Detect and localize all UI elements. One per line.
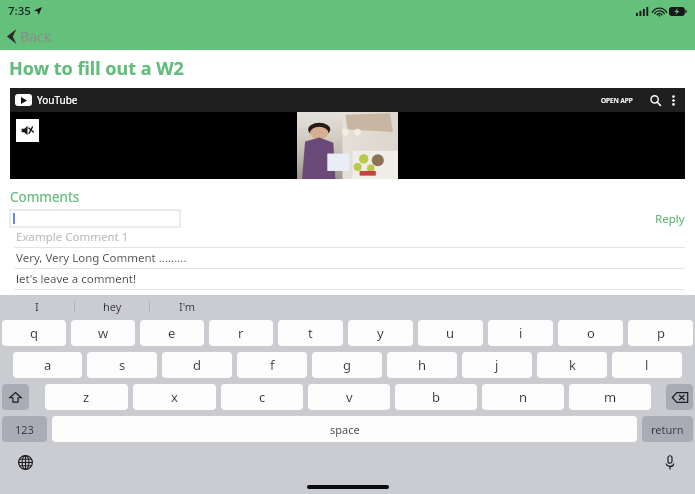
staticText: How to fill out a W2 bbox=[9, 56, 184, 81]
button[interactable] bbox=[10, 210, 180, 227]
button[interactable]: t bbox=[278, 320, 343, 346]
button[interactable]: b bbox=[395, 384, 477, 410]
staticText: u bbox=[446, 324, 455, 342]
button[interactable]: w bbox=[71, 320, 135, 346]
staticText: v bbox=[346, 388, 353, 406]
staticText: h bbox=[418, 356, 427, 374]
staticText: z bbox=[83, 388, 90, 406]
staticText: i bbox=[519, 324, 523, 342]
button[interactable]: z bbox=[45, 384, 128, 410]
staticText: k bbox=[569, 356, 576, 374]
button[interactable]: f bbox=[237, 352, 307, 378]
staticText: 7:35 bbox=[8, 3, 31, 19]
staticText: 123 bbox=[15, 422, 34, 437]
staticText: hey bbox=[103, 299, 122, 314]
button[interactable]: r bbox=[209, 320, 273, 346]
button[interactable]: c bbox=[221, 384, 303, 410]
staticText: c bbox=[259, 388, 266, 406]
staticText: y bbox=[377, 324, 384, 342]
staticText: Comments bbox=[10, 188, 80, 206]
button[interactable]: Unmute bbox=[16, 119, 39, 142]
button[interactable]: space bbox=[52, 416, 637, 442]
button[interactable]: v bbox=[308, 384, 390, 410]
staticText: j bbox=[495, 356, 499, 374]
staticText: n bbox=[519, 388, 528, 406]
button[interactable]: u bbox=[418, 320, 483, 346]
button[interactable]: Shift bbox=[2, 384, 29, 410]
staticText: OPEN APP bbox=[601, 96, 633, 105]
button[interactable]: Play video bbox=[10, 88, 685, 179]
button[interactable]: I'm bbox=[150, 295, 224, 318]
button[interactable]: h bbox=[387, 352, 457, 378]
button[interactable]: x bbox=[133, 384, 216, 410]
button[interactable]: Search bbox=[647, 92, 663, 108]
button[interactable]: Very, Very Long Comment ......... bbox=[0, 248, 695, 269]
button[interactable]: I bbox=[0, 295, 74, 318]
button[interactable]: Back bbox=[0, 22, 695, 50]
button[interactable]: Example Comment 1 bbox=[0, 227, 695, 248]
staticText: I'm bbox=[179, 299, 196, 314]
button[interactable]: l bbox=[612, 352, 682, 378]
staticText: e bbox=[168, 324, 176, 342]
staticText: m bbox=[604, 388, 617, 406]
staticText: w bbox=[98, 324, 109, 342]
staticText: r bbox=[238, 324, 244, 342]
staticText: Reply bbox=[655, 211, 685, 227]
staticText: t bbox=[308, 324, 313, 342]
button[interactable]: let's leave a comment! bbox=[0, 269, 695, 290]
staticText: p bbox=[657, 324, 665, 342]
button[interactable]: Change keyboard bbox=[14, 451, 36, 473]
staticText: q bbox=[30, 324, 38, 342]
staticText: return bbox=[651, 422, 684, 437]
staticText: x bbox=[171, 388, 178, 406]
staticText: d bbox=[193, 356, 201, 374]
button[interactable]: return bbox=[642, 416, 693, 442]
button[interactable]: 123 bbox=[2, 416, 47, 442]
staticText: space bbox=[330, 422, 360, 437]
button[interactable]: m bbox=[569, 384, 651, 410]
staticText: Back bbox=[20, 27, 52, 46]
staticText: b bbox=[432, 388, 440, 406]
button[interactable]: o bbox=[558, 320, 623, 346]
button[interactable]: n bbox=[482, 384, 564, 410]
staticText: g bbox=[343, 356, 351, 374]
button[interactable]: a bbox=[13, 352, 82, 378]
staticText: YouTube bbox=[37, 93, 78, 107]
staticText: I bbox=[35, 299, 39, 314]
staticText: l bbox=[645, 356, 649, 374]
button[interactable]: d bbox=[162, 352, 232, 378]
staticText: s bbox=[119, 356, 126, 374]
button[interactable]: k bbox=[537, 352, 607, 378]
button[interactable]: Reply bbox=[653, 211, 687, 227]
button[interactable]: i bbox=[488, 320, 553, 346]
staticText: Example Comment 1 bbox=[16, 229, 129, 245]
button[interactable]: More options bbox=[666, 93, 680, 107]
button[interactable]: y bbox=[348, 320, 413, 346]
button[interactable]: hey bbox=[75, 295, 149, 318]
button[interactable]: Dictate bbox=[659, 451, 681, 473]
staticText: let's leave a comment! bbox=[16, 271, 137, 287]
button[interactable]: p bbox=[628, 320, 693, 346]
staticText: o bbox=[587, 324, 595, 342]
button[interactable]: q bbox=[2, 320, 66, 346]
button[interactable]: s bbox=[87, 352, 157, 378]
button[interactable]: Backspace bbox=[666, 384, 693, 410]
button[interactable]: j bbox=[462, 352, 532, 378]
button[interactable]: e bbox=[140, 320, 204, 346]
button[interactable]: g bbox=[312, 352, 382, 378]
staticText: a bbox=[44, 356, 52, 374]
button[interactable]: OPEN APP bbox=[596, 94, 638, 107]
staticText: f bbox=[270, 356, 275, 374]
staticText: Very, Very Long Comment ......... bbox=[16, 250, 187, 266]
